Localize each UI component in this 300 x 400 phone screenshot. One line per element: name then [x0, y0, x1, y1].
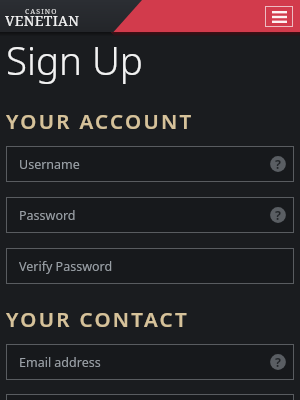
button[interactable]: Help — [267, 204, 289, 226]
button[interactable]: Menu — [265, 6, 293, 27]
staticText: YOUR ACCOUNT — [6, 107, 194, 135]
button[interactable]: Verify Password — [6, 248, 294, 284]
button[interactable]: Email address — [6, 344, 294, 380]
staticText: Username — [19, 156, 80, 173]
staticText: Verify Password — [19, 258, 113, 275]
button[interactable]: Phone — [6, 394, 294, 400]
button[interactable]: Username — [6, 146, 294, 182]
staticText: Sign Up — [6, 34, 143, 86]
staticText: VENETIAN — [5, 11, 80, 30]
staticText: ? — [275, 156, 281, 173]
staticText: Email address — [19, 354, 101, 371]
staticText: ? — [275, 354, 281, 371]
staticText: Password — [19, 207, 76, 224]
staticText: CASINO — [25, 7, 58, 17]
staticText: ? — [275, 207, 281, 224]
button[interactable]: Password — [6, 197, 294, 233]
staticText: YOUR CONTACT — [6, 305, 189, 333]
button[interactable]: Help — [267, 153, 289, 175]
button[interactable]: Help — [267, 351, 289, 373]
